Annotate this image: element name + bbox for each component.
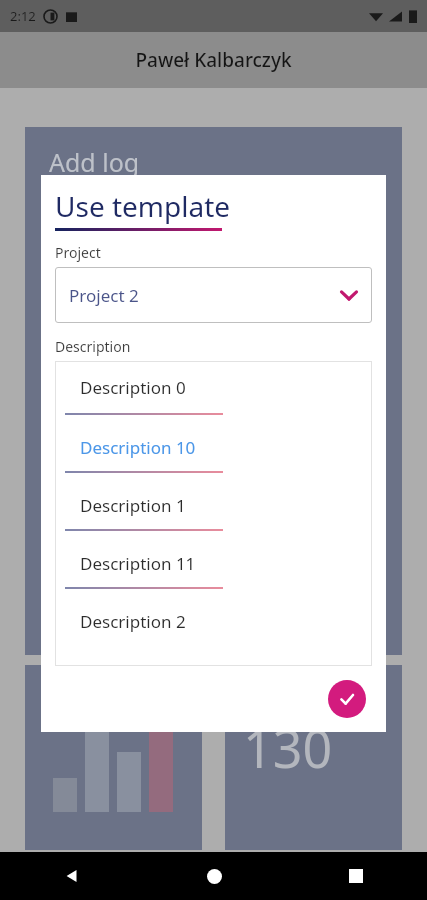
staticText: Description 1	[80, 494, 186, 517]
staticText: Description 2	[80, 610, 186, 633]
button[interactable]: Home	[143, 852, 285, 900]
button[interactable]: Description 10	[55, 424, 372, 471]
button[interactable]: Description 2	[55, 598, 372, 645]
staticText: Project 2	[69, 284, 326, 307]
staticText: Description	[55, 337, 131, 356]
staticText: 130	[243, 712, 333, 783]
button[interactable]: Project 2	[55, 267, 372, 323]
button[interactable]	[25, 665, 202, 850]
button[interactable]: April	[225, 665, 402, 850]
button[interactable]: Recent apps	[285, 852, 427, 900]
staticText: Description 0	[80, 376, 186, 399]
button[interactable]: Description 1	[55, 482, 372, 529]
button[interactable]: Confirm	[328, 680, 366, 718]
staticText: Use template	[55, 187, 231, 225]
staticText: 2:12	[10, 7, 36, 25]
staticText: Description 10	[80, 436, 196, 459]
staticText: Description 11	[80, 552, 196, 575]
button[interactable]: Description 11	[55, 540, 372, 587]
staticText: Project	[55, 243, 101, 262]
button[interactable]: Description 0	[55, 361, 372, 413]
button[interactable]: Back	[0, 852, 143, 900]
staticText: Add log	[49, 145, 140, 179]
staticText: Paweł Kalbarczyk	[135, 47, 292, 73]
other: Expand project list	[326, 272, 372, 318]
